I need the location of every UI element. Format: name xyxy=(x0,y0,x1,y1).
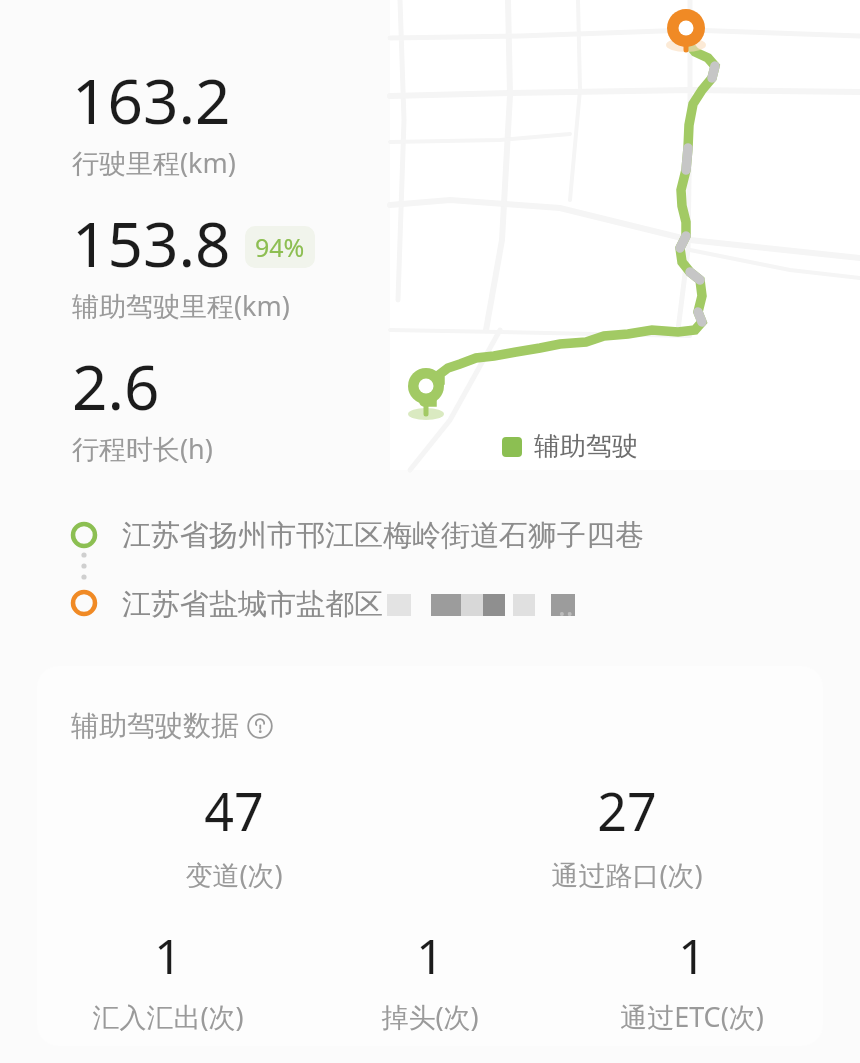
staticText: 行驶里程(km) xyxy=(72,144,236,181)
button[interactable]: 1 xyxy=(37,923,299,1035)
staticText: 1 xyxy=(154,923,182,988)
staticText: 变道(次) xyxy=(185,856,283,893)
staticText: 2.6 xyxy=(72,344,160,428)
staticText: 通过路口(次) xyxy=(551,856,703,893)
staticText: 163.2 xyxy=(72,58,231,142)
button[interactable]: 辅助驾驶 xyxy=(502,430,638,463)
button[interactable]: 行程地图 xyxy=(390,0,860,470)
button[interactable]: 1 xyxy=(561,923,823,1035)
staticText: 94% xyxy=(255,230,305,264)
staticText: 1 xyxy=(678,923,706,988)
staticText: 1 xyxy=(416,923,444,988)
button[interactable]: 27 xyxy=(430,775,823,893)
staticText: 江苏省扬州市邗江区梅岭街道石狮子四巷 xyxy=(122,517,644,554)
staticText: 行程时长(h) xyxy=(72,430,213,467)
staticText: 27 xyxy=(597,775,657,846)
staticText: 辅助驾驶数据 xyxy=(71,708,239,743)
staticText: 通过ETC(次) xyxy=(620,998,764,1035)
staticText: 153.8 xyxy=(72,201,231,285)
staticText: 掉头(次) xyxy=(381,998,479,1035)
staticText: 江苏省盐城市盐都区 xyxy=(122,586,383,623)
button[interactable]: 辅助驾驶数据 xyxy=(71,708,273,743)
staticText: .. xyxy=(558,585,574,624)
staticText: 汇入汇出(次) xyxy=(92,998,244,1035)
other: 帮助 xyxy=(247,713,273,739)
button[interactable]: 47 xyxy=(37,775,430,893)
staticText: 辅助驾驶 xyxy=(534,430,638,463)
staticText: 47 xyxy=(204,775,264,846)
staticText: 辅助驾驶里程(km) xyxy=(72,287,290,324)
button[interactable]: 江苏省盐城市盐都区 xyxy=(122,585,574,624)
button[interactable]: 1 xyxy=(299,923,561,1035)
button[interactable]: 江苏省扬州市邗江区梅岭街道石狮子四巷 xyxy=(122,517,644,554)
